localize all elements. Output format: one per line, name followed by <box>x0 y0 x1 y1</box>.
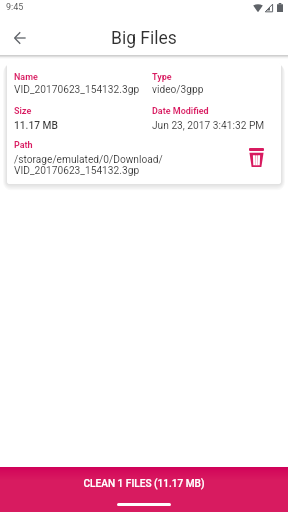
staticText: Name <box>14 72 38 83</box>
staticText: video/3gpp <box>152 84 204 96</box>
staticText: CLEAN 1 FILES (11.17 MB) <box>83 478 205 490</box>
staticText: VID_20170623_154132.3gp <box>14 165 140 177</box>
staticText: Big Files <box>111 28 177 49</box>
staticText: Type <box>152 72 172 83</box>
staticText: Size <box>14 106 32 117</box>
staticText: Jun 23, 2017 3:41:32 PM <box>152 120 265 132</box>
button[interactable]: Name <box>7 63 281 184</box>
staticText: Path <box>14 140 33 151</box>
button[interactable]: CLEAN 1 FILES (11.17 MB) <box>0 467 288 512</box>
staticText: 9:45 <box>6 2 24 13</box>
button[interactable]: Back <box>6 24 34 52</box>
button[interactable]: Delete <box>242 143 270 171</box>
staticText: VID_20170623_154132.3gp <box>14 84 140 96</box>
staticText: /storage/emulated/0/Download/ <box>14 154 163 166</box>
staticText: 11.17 MB <box>14 120 58 132</box>
staticText: Date Modified <box>152 106 209 117</box>
